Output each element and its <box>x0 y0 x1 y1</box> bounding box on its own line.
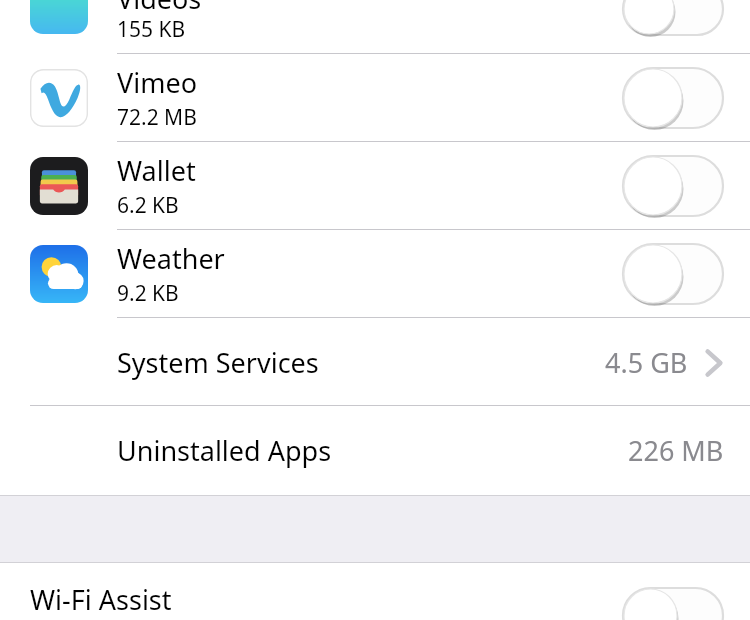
staticText: Vimeo <box>117 64 197 101</box>
button[interactable]: Vimeo <box>0 54 750 142</box>
button[interactable]: Wallet <box>0 142 750 230</box>
staticText: Wi-Fi Assist <box>30 581 172 618</box>
staticText: 226 MB <box>628 432 724 469</box>
button[interactable]: Toggle, off <box>622 587 724 620</box>
button[interactable]: Videos <box>0 0 750 54</box>
button[interactable]: Toggle, off <box>622 67 724 129</box>
staticText: System Services <box>117 344 319 381</box>
staticText: 72.2 MB <box>117 103 197 132</box>
button[interactable]: Wi-Fi Assist <box>0 563 750 620</box>
button[interactable]: Toggle, off <box>622 155 724 217</box>
staticText: 4.5 GB <box>605 344 688 381</box>
staticText: Weather <box>117 240 225 277</box>
staticText: Uninstalled Apps <box>117 432 332 469</box>
staticText: Wallet <box>117 152 196 189</box>
button[interactable]: Weather <box>0 230 750 318</box>
staticText: 155 KB <box>117 15 186 44</box>
other: System Services details <box>704 346 724 380</box>
button[interactable]: Toggle, off <box>622 243 724 305</box>
button[interactable]: Toggle, off <box>622 0 724 36</box>
button[interactable]: Uninstalled Apps <box>0 406 750 494</box>
staticText: 6.2 KB <box>117 191 179 220</box>
button[interactable]: System Services <box>0 318 750 406</box>
staticText: Videos <box>117 0 202 17</box>
staticText: 9.2 KB <box>117 279 179 308</box>
